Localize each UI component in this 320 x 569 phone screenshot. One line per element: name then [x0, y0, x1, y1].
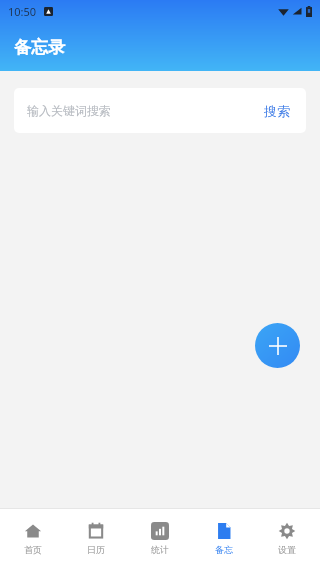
staticText: 首页 — [24, 544, 42, 555]
staticText: 日历 — [87, 544, 105, 555]
button[interactable]: 首页 — [2, 515, 64, 562]
staticText: 备忘录 — [14, 37, 65, 58]
staticText: 搜索 — [264, 103, 290, 119]
staticText: 输入关键词搜索 — [27, 103, 111, 118]
staticText: 设置 — [278, 544, 296, 555]
button[interactable]: 新建备忘 — [255, 323, 300, 368]
staticText: 统计 — [151, 544, 169, 555]
button[interactable]: 搜索 — [248, 88, 306, 133]
button[interactable]: 统计 — [129, 515, 191, 562]
button[interactable]: 日历 — [65, 515, 127, 562]
button[interactable]: 输入关键词搜索 — [14, 88, 248, 133]
button[interactable]: 设置 — [256, 515, 318, 562]
button[interactable]: 备忘 — [193, 515, 255, 562]
staticText: 10:50 — [8, 4, 37, 19]
staticText: 备忘 — [215, 544, 233, 555]
